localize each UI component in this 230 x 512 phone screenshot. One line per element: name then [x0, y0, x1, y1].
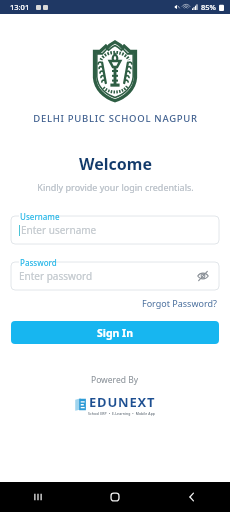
- staticText: 85%: [201, 2, 216, 12]
- staticText: Kindly provide your login credentials.: [37, 181, 194, 193]
- staticText: Powered By: [91, 374, 139, 386]
- staticText: DELHI PUBLIC SCHOOL NAGPUR: [33, 112, 198, 125]
- staticText: Forgot Password?: [142, 297, 217, 309]
- staticText: Username: [20, 211, 60, 222]
- button[interactable]: Sign In: [11, 321, 219, 344]
- staticText: Enter username: [21, 223, 97, 237]
- staticText: 13:01: [10, 2, 30, 12]
- button[interactable]: Home: [76, 482, 153, 512]
- staticText: EDUNEXT: [89, 393, 156, 411]
- button[interactable]: Forgot Password?: [140, 295, 219, 311]
- staticText: Password: [20, 257, 57, 268]
- staticText: Sign In: [97, 326, 134, 340]
- staticText: Welcome: [79, 153, 152, 175]
- button[interactable]: EDUNEXT: [73, 392, 158, 417]
- button[interactable]: Show password: [195, 268, 211, 284]
- button[interactable]: Enter password: [11, 262, 219, 290]
- button[interactable]: Recent apps: [0, 482, 76, 512]
- button[interactable]: Back: [153, 482, 230, 512]
- staticText: Enter password: [19, 269, 93, 283]
- button[interactable]: Enter username: [11, 216, 219, 244]
- staticText: School ERP • E-Learning • Mobile App: [88, 411, 156, 416]
